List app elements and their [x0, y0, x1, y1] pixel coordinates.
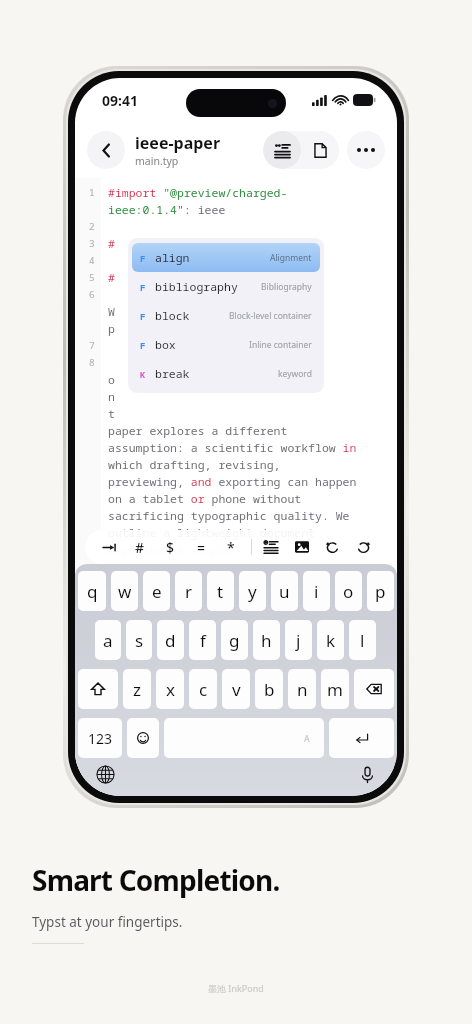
staticText: F	[140, 310, 146, 322]
staticText: 墨池 InkPond	[208, 982, 264, 994]
button[interactable]: K	[132, 359, 320, 388]
button[interactable]: t	[207, 571, 234, 611]
staticText: outline a lightweight document	[108, 525, 315, 541]
button[interactable]: F	[132, 243, 320, 272]
staticText: F	[140, 252, 146, 264]
button[interactable]: b	[255, 669, 283, 709]
button[interactable]: F	[132, 301, 320, 330]
staticText: a	[103, 629, 113, 652]
staticText: $	[166, 538, 175, 557]
staticText: i	[314, 580, 319, 603]
staticText: Block-level container	[229, 310, 312, 322]
button[interactable]: j	[285, 620, 312, 660]
button[interactable]: e	[143, 571, 170, 611]
staticText: q	[87, 580, 98, 603]
staticText: 2	[89, 220, 95, 233]
staticText: F	[140, 281, 146, 293]
staticText: #import "@preview/charged-	[108, 185, 288, 201]
staticText: align	[155, 250, 190, 266]
button[interactable]: =	[190, 536, 212, 558]
button[interactable]: x	[156, 669, 184, 709]
staticText: m	[327, 678, 343, 701]
button[interactable]: More options	[347, 131, 385, 169]
button[interactable]: Shift	[78, 669, 118, 709]
staticText: paper explores a different	[108, 423, 288, 439]
staticText: x	[166, 678, 175, 701]
button[interactable]: Dictate	[352, 759, 382, 789]
staticText: 7	[89, 339, 95, 352]
button[interactable]: Insert image	[291, 536, 313, 558]
button[interactable]: k	[317, 620, 344, 660]
staticText: which drafting, revising,	[108, 457, 281, 473]
button[interactable]: p	[367, 571, 394, 611]
button[interactable]: h	[253, 620, 280, 660]
staticText: Alignment	[270, 252, 312, 264]
button[interactable]: Undo	[321, 536, 343, 558]
staticText: Smart Completion.	[32, 861, 280, 899]
staticText: r	[185, 580, 193, 603]
staticText: bibliography	[155, 279, 238, 295]
button[interactable]: Redo	[352, 536, 374, 558]
button[interactable]: w	[111, 571, 138, 611]
staticText: =	[197, 538, 206, 557]
button[interactable]: y	[239, 571, 266, 611]
button[interactable]: Tab	[98, 536, 120, 558]
staticText: c	[199, 678, 208, 701]
button[interactable]: Change keyboard	[90, 759, 120, 789]
button[interactable]: z	[123, 669, 151, 709]
button[interactable]: l	[349, 620, 376, 660]
button[interactable]: Space	[164, 718, 324, 758]
button[interactable]: Back	[87, 131, 125, 169]
staticText: 4	[89, 254, 95, 267]
button[interactable]: #	[129, 536, 151, 558]
button[interactable]: *	[220, 536, 242, 558]
staticText: l	[360, 629, 365, 652]
staticText: g	[229, 629, 240, 652]
button[interactable]: q	[78, 571, 106, 611]
staticText: 8	[89, 356, 95, 369]
button[interactable]: F	[132, 330, 320, 359]
button[interactable]: v	[222, 669, 250, 709]
button[interactable]: c	[189, 669, 217, 709]
staticText: main.typ	[135, 154, 179, 168]
staticText: 6	[89, 288, 95, 301]
button[interactable]: 123	[78, 718, 122, 758]
button[interactable]: n	[288, 669, 316, 709]
staticText: 5	[89, 271, 95, 284]
button[interactable]: o	[335, 571, 362, 611]
button[interactable]: F	[132, 272, 320, 301]
button[interactable]: u	[271, 571, 298, 611]
staticText: 123	[88, 729, 113, 748]
staticText: y	[248, 580, 257, 603]
button[interactable]: Source view	[263, 131, 301, 169]
button[interactable]: m	[321, 669, 349, 709]
button[interactable]: s	[126, 620, 152, 660]
button[interactable]: a	[95, 620, 121, 660]
button[interactable]: f	[189, 620, 216, 660]
button[interactable]: $	[159, 536, 181, 558]
button[interactable]: i	[303, 571, 330, 611]
staticText: box	[155, 337, 176, 353]
button[interactable]: Emoji	[127, 718, 159, 758]
staticText: 3	[89, 237, 95, 250]
button[interactable]: List	[260, 536, 282, 558]
staticText: n	[108, 389, 115, 405]
staticText: f	[200, 629, 206, 652]
button[interactable]: Return	[329, 718, 394, 758]
staticText: o	[343, 580, 354, 603]
staticText: t	[217, 580, 224, 603]
staticText: previewing, and exporting can happen	[108, 474, 357, 490]
button[interactable]: r	[175, 571, 202, 611]
button[interactable]: g	[221, 620, 248, 660]
button[interactable]: Backspace	[354, 669, 394, 709]
staticText: #	[108, 236, 115, 252]
staticText: d	[165, 629, 176, 652]
staticText: *	[227, 538, 235, 557]
button[interactable]: d	[157, 620, 184, 660]
staticText: pipeline, a sample.	[108, 542, 240, 558]
button[interactable]: Preview	[301, 131, 339, 169]
staticText: s	[135, 629, 144, 652]
staticText: u	[279, 580, 290, 603]
staticText: A	[304, 732, 310, 744]
staticText: ieee:0.1.4": ieee	[108, 202, 226, 218]
